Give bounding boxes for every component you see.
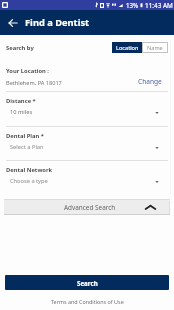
staticText: Bethlehem, PA 18017 xyxy=(6,79,62,87)
button[interactable]: Back xyxy=(5,10,21,35)
staticText: Name xyxy=(147,44,163,52)
staticText: Find a Dentist xyxy=(25,16,90,29)
staticText: Dental Plan * xyxy=(6,132,44,140)
button[interactable]: Dental Network xyxy=(0,163,174,194)
button[interactable]: Search xyxy=(5,275,169,290)
staticText: Change xyxy=(138,77,162,86)
button[interactable]: Terms and Conditions of Use xyxy=(0,295,174,307)
staticText: Search xyxy=(77,279,98,287)
staticText: Terms and Conditions of Use xyxy=(51,298,124,305)
button[interactable]: Location xyxy=(112,42,142,53)
staticText: Your Location : xyxy=(6,67,49,75)
staticText: Advanced Search xyxy=(64,203,116,212)
staticText: Select a Plan xyxy=(10,143,44,151)
staticText: Dental Network xyxy=(6,166,53,174)
staticText: Distance * xyxy=(6,97,36,105)
staticText: 10 miles xyxy=(10,108,33,116)
button[interactable]: Distance * xyxy=(0,94,174,125)
staticText: 11:43 AM xyxy=(145,1,173,10)
staticText: Search by xyxy=(6,44,34,52)
button[interactable]: Advanced Search xyxy=(4,199,170,215)
staticText: 13% xyxy=(126,1,139,9)
staticText: Location xyxy=(116,44,139,52)
button[interactable]: Dental Plan * xyxy=(0,129,174,160)
button[interactable]: Change xyxy=(128,73,162,89)
button[interactable]: Name xyxy=(142,42,168,53)
staticText: Choose a type xyxy=(10,177,48,185)
